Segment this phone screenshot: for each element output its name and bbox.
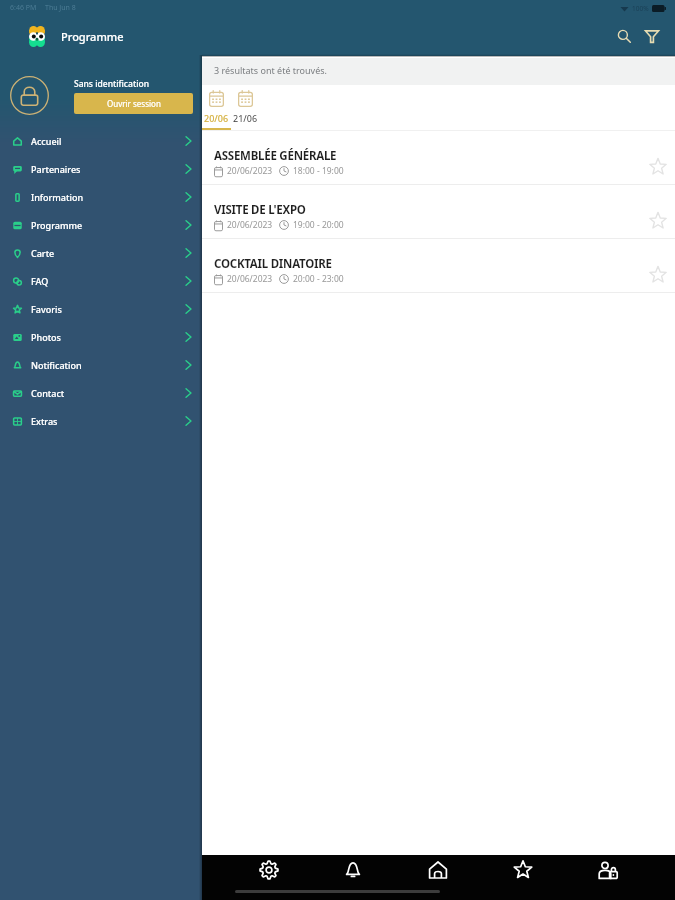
staticText: 19:00 - 20:00 — [293, 219, 344, 231]
button[interactable]: Programme — [13, 211, 192, 239]
button[interactable]: Accueil — [13, 127, 192, 155]
button[interactable]: Partenaires — [13, 155, 192, 183]
staticText: 20/06/2023 — [227, 273, 273, 285]
staticText: Contact — [31, 387, 65, 399]
button[interactable]: 20/06 — [202, 85, 231, 130]
staticText: Photos — [31, 331, 61, 343]
button[interactable]: Extras — [13, 407, 192, 435]
button[interactable]: COCKTAIL DINATOIRE — [202, 239, 675, 293]
staticText: 100% — [632, 4, 649, 13]
staticText: 3 résultats ont été trouvés. — [214, 64, 327, 76]
button[interactable]: Filter — [640, 24, 664, 48]
button[interactable]: Home — [395, 855, 480, 885]
staticText: 20:00 - 23:00 — [293, 273, 344, 285]
button[interactable]: ASSEMBLÉE GÉNÉRALE — [202, 131, 675, 185]
staticText: Ouvrir session — [107, 98, 161, 109]
button[interactable]: VISITE DE L'EXPO — [202, 185, 675, 239]
button[interactable]: Settings — [227, 855, 311, 885]
staticText: FAQ — [31, 275, 49, 287]
staticText: Information — [31, 191, 84, 203]
button[interactable]: Photos — [13, 323, 192, 351]
button[interactable]: Notification — [13, 351, 192, 379]
staticText: Favoris — [31, 303, 62, 315]
staticText: 20/06/2023 — [227, 165, 273, 177]
button[interactable]: Favorite — [646, 155, 670, 179]
button[interactable]: Favoris — [13, 295, 192, 323]
staticText: COCKTAIL DINATOIRE — [214, 256, 332, 272]
button[interactable]: Notifications — [311, 855, 395, 885]
staticText: 20/06 — [204, 112, 229, 124]
staticText: Programme — [61, 29, 124, 44]
staticText: ASSEMBLÉE GÉNÉRALE — [214, 148, 337, 164]
staticText: Extras — [31, 415, 58, 427]
staticText: 20/06/2023 — [227, 219, 273, 231]
staticText: 18:00 - 19:00 — [293, 165, 344, 177]
staticText: Notification — [31, 359, 82, 371]
staticText: Accueil — [31, 135, 62, 147]
button[interactable]: Carte — [13, 239, 192, 267]
button[interactable]: Favorite — [646, 263, 670, 287]
staticText: Carte — [31, 247, 55, 259]
button[interactable]: 21/06 — [231, 85, 260, 130]
button[interactable]: Information — [13, 183, 192, 211]
button[interactable]: Ouvrir session — [74, 93, 193, 114]
staticText: 6:46 PM — [10, 3, 37, 13]
button[interactable]: Favorites — [480, 855, 565, 885]
button[interactable]: Search — [612, 24, 636, 48]
staticText: Programme — [31, 219, 83, 231]
staticText: 21/06 — [233, 112, 258, 124]
staticText: Partenaires — [31, 163, 81, 175]
button[interactable]: FAQ — [13, 267, 192, 295]
staticText: VISITE DE L'EXPO — [214, 202, 306, 218]
button[interactable]: Account — [565, 855, 650, 885]
button[interactable]: Contact — [13, 379, 192, 407]
staticText: Thu Jun 8 — [45, 3, 76, 13]
button[interactable]: Favorite — [646, 209, 670, 233]
staticText: Sans identification — [74, 78, 149, 90]
